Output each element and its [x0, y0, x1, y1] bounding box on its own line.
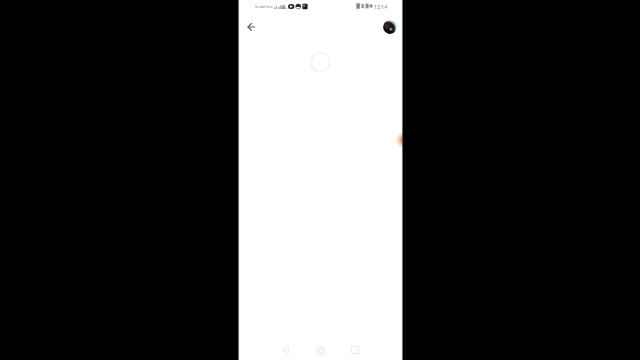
- button[interactable]: Add: [395, 131, 403, 149]
- button[interactable]: Profile: [383, 20, 397, 34]
- button[interactable]: Home: [311, 341, 329, 359]
- button[interactable]: Back: [276, 341, 294, 359]
- staticText: 12:14: [374, 3, 388, 10]
- staticText: Vodafone: [255, 4, 273, 9]
- button[interactable]: Recents: [346, 341, 364, 359]
- button[interactable]: Back: [242, 18, 260, 36]
